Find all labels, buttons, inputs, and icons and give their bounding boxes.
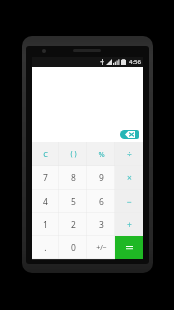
button[interactable]: 2 — [59, 213, 87, 236]
button[interactable]: 7 — [32, 166, 59, 190]
staticText: 8 — [71, 172, 76, 184]
button[interactable]: × — [115, 166, 143, 190]
button[interactable]: 6 — [87, 190, 115, 213]
staticText: + — [127, 219, 132, 231]
button[interactable]: ÷ — [115, 142, 143, 166]
button[interactable]: 9 — [87, 166, 115, 190]
staticText: 5 — [71, 196, 76, 208]
staticText: . — [44, 242, 47, 254]
staticText: − — [127, 196, 132, 208]
button[interactable]: + — [115, 213, 143, 236]
button[interactable]: +/− — [87, 236, 115, 259]
staticText: 4:56 — [129, 58, 141, 66]
staticText: 7 — [43, 172, 48, 184]
staticText: ( ) — [70, 149, 77, 159]
button[interactable]: 8 — [59, 166, 87, 190]
staticText: 2 — [71, 219, 76, 231]
button[interactable]: − — [115, 190, 143, 213]
staticText: C — [43, 149, 48, 159]
staticText: % — [98, 149, 105, 159]
staticText: 4 — [43, 196, 48, 208]
button[interactable]: % — [87, 142, 115, 166]
staticText: × — [127, 172, 132, 184]
staticText: 9 — [99, 172, 104, 184]
staticText: 0 — [71, 242, 76, 254]
button[interactable]: . — [32, 236, 59, 259]
button[interactable]: 3 — [87, 213, 115, 236]
button[interactable] — [115, 236, 143, 259]
staticText: 3 — [99, 219, 104, 231]
button[interactable]: ( ) — [59, 142, 87, 166]
button[interactable]: Backspace — [120, 130, 139, 139]
button[interactable]: 1 — [32, 213, 59, 236]
staticText: +/− — [96, 243, 107, 253]
button[interactable]: C — [32, 142, 59, 166]
staticText: 1 — [43, 219, 48, 231]
button[interactable]: 5 — [59, 190, 87, 213]
staticText: 6 — [99, 196, 104, 208]
staticText: ÷ — [127, 148, 132, 160]
button[interactable]: 4 — [32, 190, 59, 213]
button[interactable]: 0 — [59, 236, 87, 259]
